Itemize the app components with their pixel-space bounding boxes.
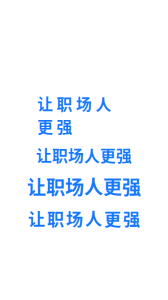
staticText: 让职场人更强 — [37, 92, 131, 138]
staticText: 让职场人更强 — [36, 144, 132, 166]
staticText: 让职场人更强 — [28, 206, 140, 231]
staticText: 让职场人更强 — [27, 172, 141, 200]
